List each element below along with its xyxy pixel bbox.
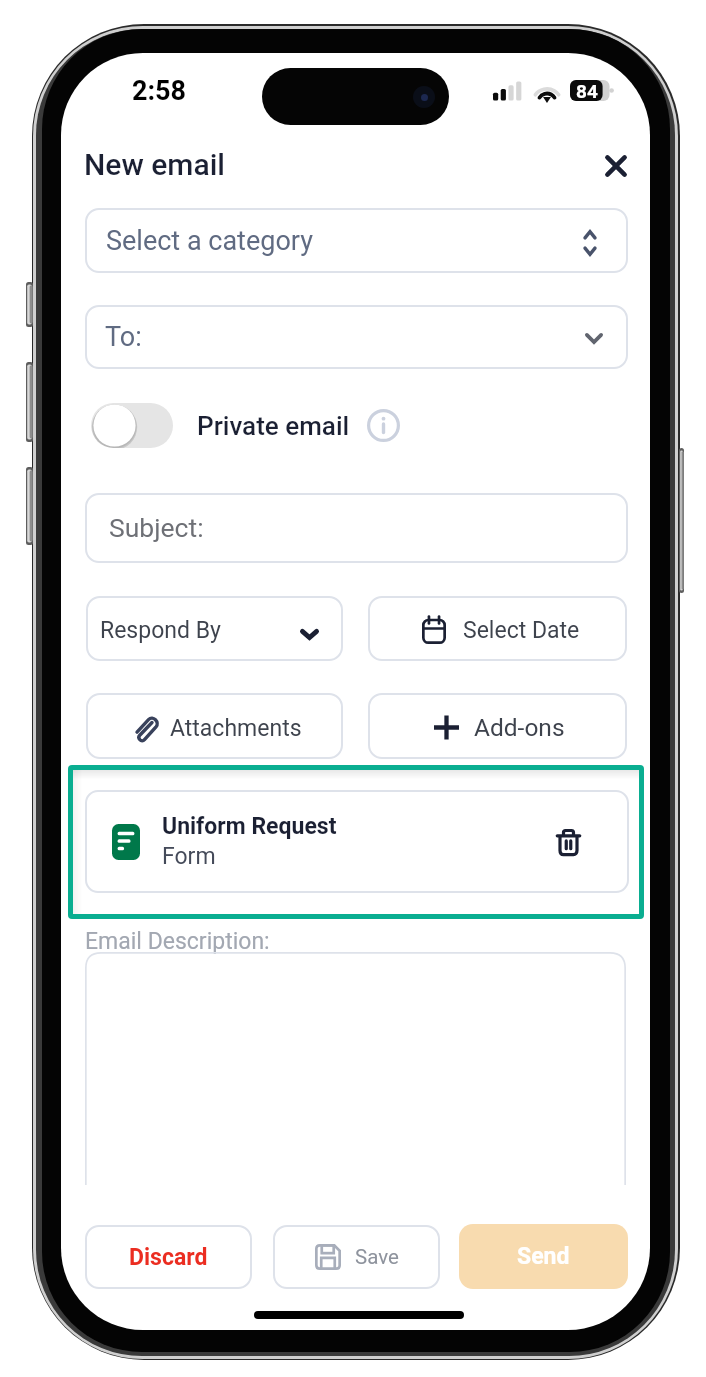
- button[interactable]: Info: [367, 409, 400, 442]
- button[interactable]: Attachments: [86, 693, 343, 759]
- staticText: Private email: [197, 411, 350, 441]
- button[interactable]: Uniform Request: [85, 790, 629, 893]
- staticText: Discard: [129, 1244, 208, 1271]
- button[interactable]: Respond By: [86, 596, 343, 661]
- staticText: Form: [162, 843, 216, 870]
- button[interactable]: Delete attachment: [548, 822, 588, 862]
- staticText: Email Description:: [85, 928, 270, 955]
- button[interactable]: To:: [85, 305, 628, 369]
- button[interactable]: Discard: [85, 1225, 252, 1289]
- button[interactable]: Select Date: [368, 596, 627, 661]
- button[interactable]: Close: [592, 142, 640, 190]
- staticText: 84: [576, 80, 598, 101]
- staticText: To:: [105, 321, 142, 353]
- staticText: Select Date: [463, 617, 580, 644]
- button[interactable]: Save: [273, 1225, 440, 1289]
- button[interactable]: [85, 952, 626, 1185]
- staticText: Subject:: [109, 512, 204, 543]
- staticText: Add-ons: [474, 713, 565, 742]
- button[interactable]: Subject:: [85, 493, 628, 563]
- staticText: Attachments: [170, 715, 302, 742]
- staticText: Send: [517, 1243, 570, 1270]
- staticText: Save: [355, 1245, 399, 1269]
- button[interactable]: Send: [459, 1224, 628, 1289]
- staticText: Respond By: [100, 617, 221, 644]
- staticText: Uniform Request: [162, 813, 337, 840]
- button[interactable]: Private email toggle: [91, 403, 173, 448]
- staticText: 2:58: [132, 75, 187, 107]
- button[interactable]: Select a category: [85, 208, 628, 273]
- button[interactable]: Add-ons: [368, 693, 627, 759]
- staticText: Select a category: [106, 225, 313, 257]
- staticText: New email: [84, 147, 225, 182]
